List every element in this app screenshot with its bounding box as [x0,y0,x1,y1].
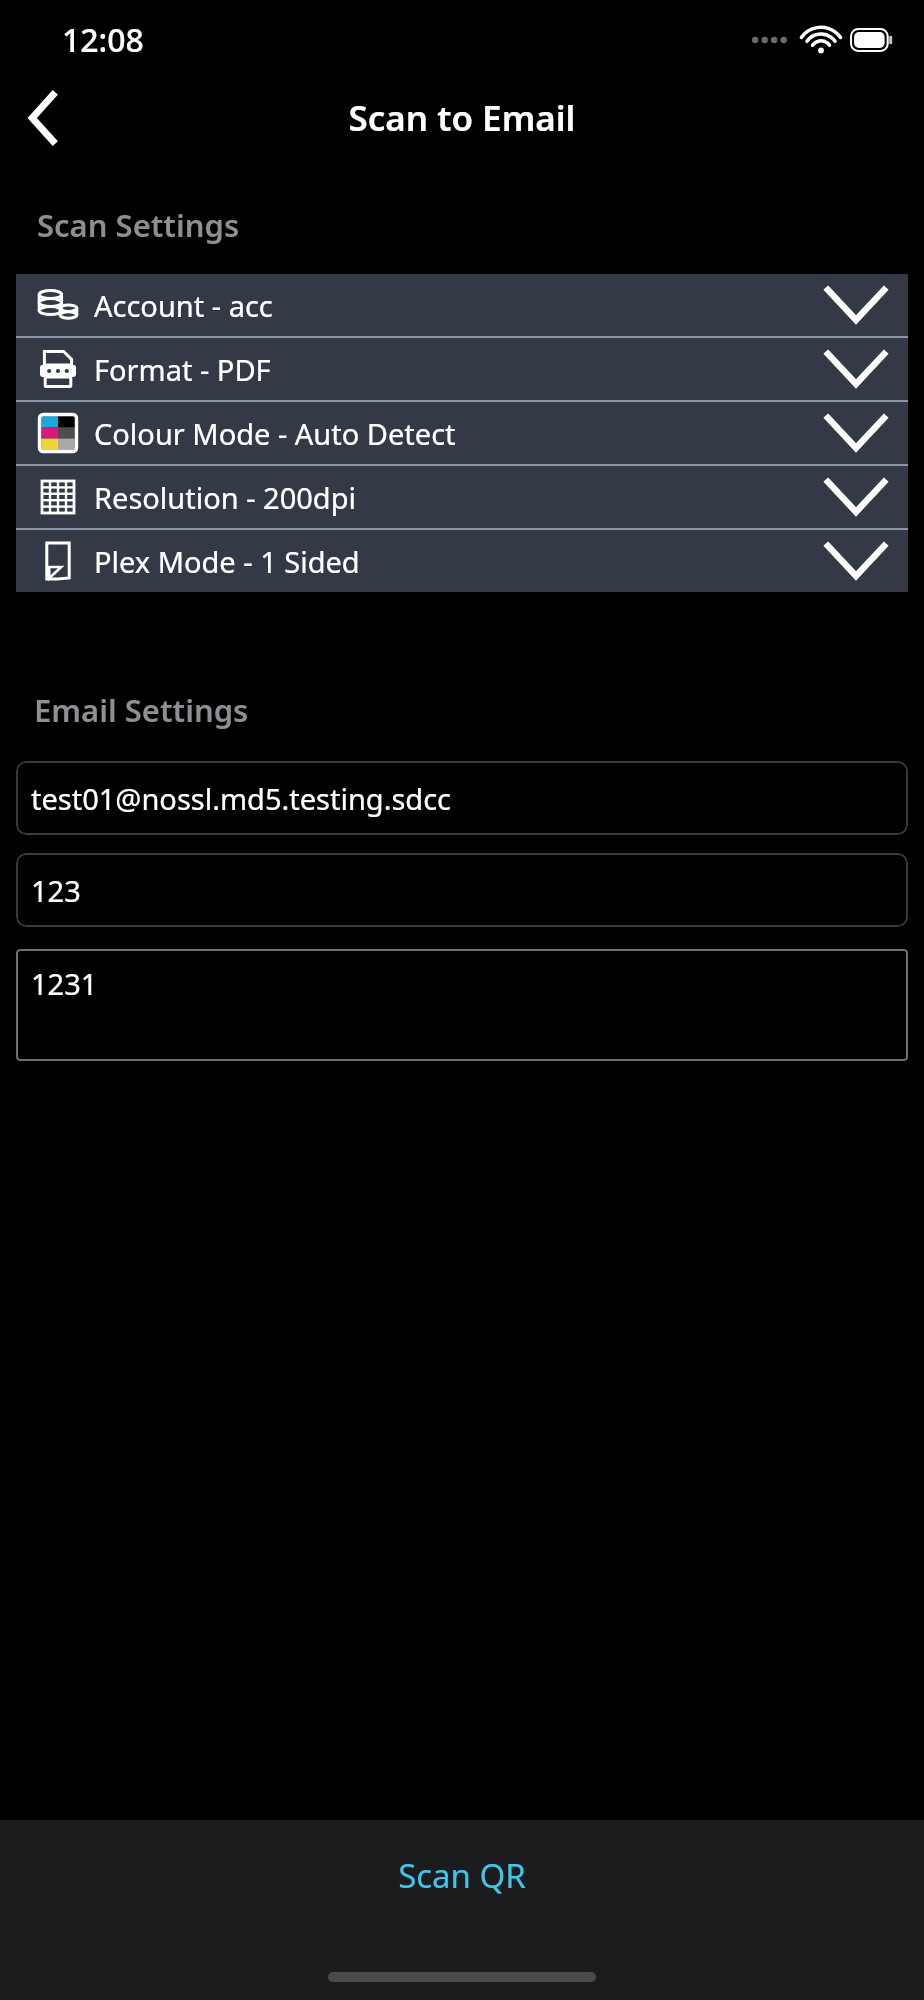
staticText: Email Settings [34,689,249,731]
button[interactable]: 1231 [16,949,908,1061]
staticText: Scan QR [398,1853,526,1898]
staticText: 123 [31,871,81,910]
button[interactable]: Plex Mode - 1 Sided [16,530,908,592]
button[interactable]: Scan QR [0,1820,924,1930]
staticText: Format - PDF [94,350,271,389]
staticText: 12:08 [62,18,144,62]
staticText: 1231 [31,964,98,1003]
button[interactable]: Back [12,86,76,150]
button[interactable]: Resolution - 200dpi [16,466,908,528]
button[interactable]: 123 [16,853,908,927]
staticText: Scan to Email [348,94,576,142]
button[interactable]: Format - PDF [16,338,908,400]
button[interactable]: Account - acc [16,274,908,336]
button[interactable]: test01@nossl.md5.testing.sdcc [16,761,908,835]
staticText: Colour Mode - Auto Detect [94,414,456,453]
staticText: test01@nossl.md5.testing.sdcc [31,779,452,818]
staticText: Account - acc [94,286,273,325]
staticText: Resolution - 200dpi [94,478,356,517]
staticText: Scan Settings [37,204,240,246]
button[interactable]: Colour Mode - Auto Detect [16,402,908,464]
staticText: Plex Mode - 1 Sided [94,542,360,581]
